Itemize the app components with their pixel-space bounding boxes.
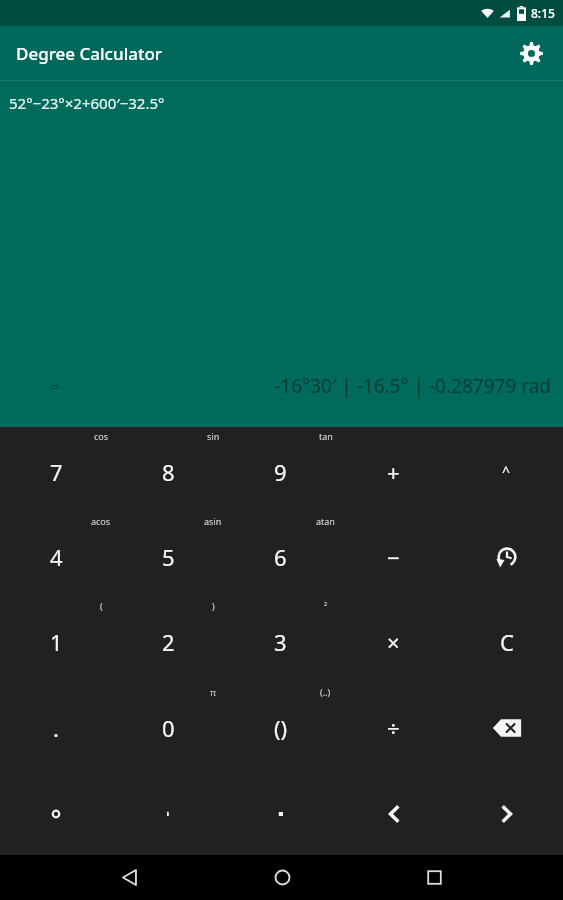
button[interactable]: C xyxy=(450,597,563,683)
staticText: ² xyxy=(324,600,328,612)
staticText: sin xyxy=(207,430,220,442)
staticText: π xyxy=(210,686,216,698)
button[interactable]: Home xyxy=(258,855,306,900)
staticText: () xyxy=(274,713,288,743)
button[interactable]: Previous xyxy=(337,769,450,855)
button[interactable]: × xyxy=(337,597,450,683)
staticText: ( xyxy=(100,600,103,612)
button[interactable]: ÷ xyxy=(337,683,450,769)
button[interactable]: Backspace xyxy=(450,683,563,769)
staticText: 4 xyxy=(50,542,63,572)
button[interactable]: Seconds xyxy=(224,769,337,855)
staticText: × xyxy=(387,627,400,657)
button[interactable]: History xyxy=(450,512,563,597)
button[interactable]: ) xyxy=(112,597,224,683)
staticText: 52°−23°×2+600′−32.5° xyxy=(9,93,165,113)
staticText: 8:15 xyxy=(531,5,555,21)
staticText: . xyxy=(53,713,59,743)
button[interactable]: − xyxy=(337,512,450,597)
button[interactable]: cos xyxy=(0,427,112,512)
staticText: 5 xyxy=(162,542,175,572)
button[interactable]: atan xyxy=(224,512,337,597)
staticText: atan xyxy=(316,515,335,527)
staticText: 7 xyxy=(50,457,63,487)
staticText: 9 xyxy=(274,457,287,487)
staticText: -16°30′ | -16.5° | -0.287979 rad xyxy=(59,373,551,399)
staticText: 6 xyxy=(274,542,287,572)
button[interactable]: Settings xyxy=(509,31,553,75)
button[interactable]: (..) xyxy=(224,683,337,769)
staticText: Degree Calculator xyxy=(16,42,163,65)
staticText: tan xyxy=(319,430,333,442)
staticText: (..) xyxy=(320,686,331,698)
staticText: 2 xyxy=(162,627,175,657)
button[interactable]: ^ xyxy=(450,427,563,512)
button[interactable]: Minutes xyxy=(112,769,224,855)
button[interactable]: Degrees xyxy=(0,769,112,855)
button[interactable]: π xyxy=(112,683,224,769)
button[interactable]: + xyxy=(337,427,450,512)
button[interactable]: sin xyxy=(112,427,224,512)
staticText: 0 xyxy=(162,713,175,743)
button[interactable]: tan xyxy=(224,427,337,512)
staticText: C xyxy=(500,627,514,657)
staticText: ^ xyxy=(502,462,511,481)
button[interactable]: ( xyxy=(0,597,112,683)
button[interactable]: . xyxy=(0,683,112,769)
staticText: asin xyxy=(204,515,222,527)
staticText: = xyxy=(50,377,59,396)
staticText: ) xyxy=(212,600,215,612)
staticText: 1 xyxy=(50,627,63,657)
staticText: 3 xyxy=(274,627,287,657)
button[interactable]: ² xyxy=(224,597,337,683)
button[interactable]: Next xyxy=(450,769,563,855)
button[interactable]: Recents xyxy=(410,855,458,900)
staticText: + xyxy=(387,457,400,487)
button[interactable]: asin xyxy=(112,512,224,597)
staticText: cos xyxy=(94,430,109,442)
button[interactable]: Back xyxy=(105,855,153,900)
staticText: acos xyxy=(91,515,111,527)
staticText: 8 xyxy=(162,457,175,487)
staticText: ÷ xyxy=(387,713,400,743)
button[interactable]: acos xyxy=(0,512,112,597)
staticText: − xyxy=(387,542,400,572)
